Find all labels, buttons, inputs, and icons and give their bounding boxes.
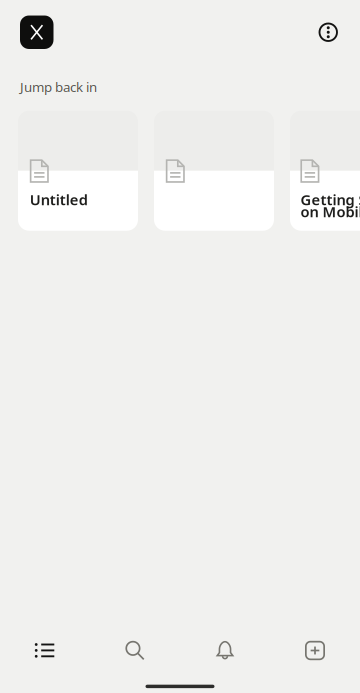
button[interactable]: Search xyxy=(90,627,180,673)
staticText: Untitled xyxy=(30,190,88,209)
button[interactable]: New page xyxy=(270,627,360,673)
button[interactable] xyxy=(154,111,274,231)
button[interactable]: Getting Started on Mobile xyxy=(290,111,360,231)
button[interactable]: Home xyxy=(0,627,90,673)
staticText: Jump back in xyxy=(20,78,97,96)
button[interactable]: Untitled xyxy=(18,111,138,231)
button[interactable]: Workspace xyxy=(20,15,53,49)
button[interactable]: Notifications xyxy=(180,627,270,673)
button[interactable]: More options xyxy=(311,15,345,49)
staticText: Getting Started on Mobile xyxy=(300,190,360,221)
